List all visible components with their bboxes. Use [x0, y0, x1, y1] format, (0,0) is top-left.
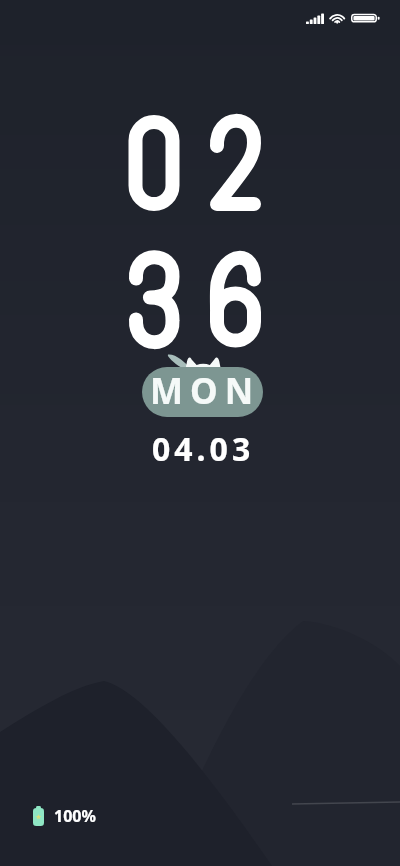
- staticText: 100%: [54, 805, 96, 827]
- staticText: MON: [150, 367, 261, 415]
- button[interactable]: [142, 367, 263, 417]
- other: Status bar: [0, 0, 400, 866]
- staticText: 04.03: [152, 427, 255, 471]
- button[interactable]: Battery 100 percent: [33, 805, 96, 827]
- other: Battery 100 percent: [33, 806, 44, 826]
- button[interactable]: [0, 0, 400, 866]
